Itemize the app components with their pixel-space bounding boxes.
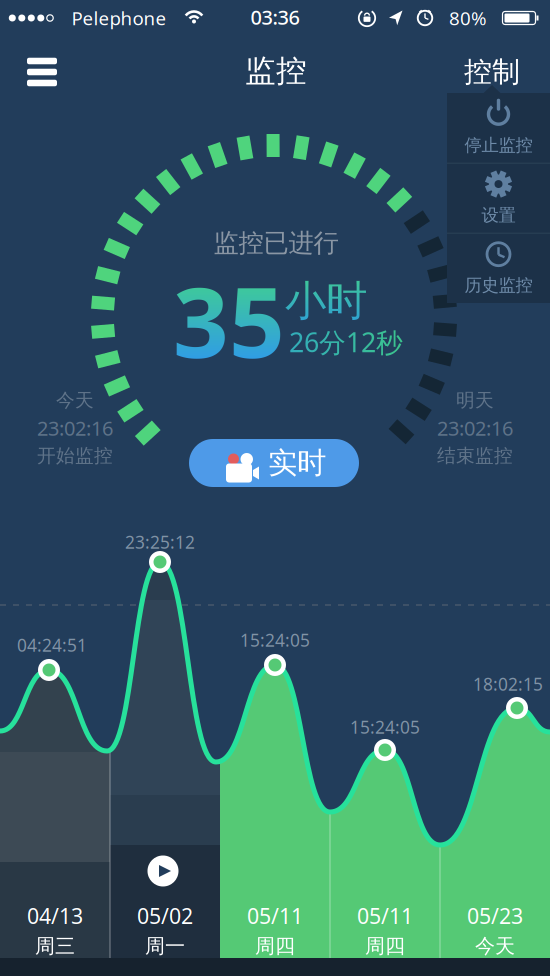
staticText: 开始监控 (37, 444, 113, 467)
button[interactable]: 控制 (457, 52, 527, 92)
button[interactable]: 05/23 (441, 899, 549, 961)
staticText: 15:24:05 (240, 628, 310, 651)
staticText: 历史监控 (464, 275, 532, 296)
staticText: 05/11 (247, 902, 303, 930)
button[interactable]: 实时 (189, 439, 359, 487)
staticText: 04/13 (27, 902, 83, 930)
staticText: 23:02:16 (437, 415, 513, 441)
staticText: 23:25:12 (125, 530, 195, 553)
staticText: 03:36 (250, 4, 299, 30)
staticText: 80% (449, 6, 487, 30)
staticText: 周一 (145, 934, 185, 958)
staticText: 设置 (481, 205, 515, 226)
staticText: 05/23 (467, 902, 523, 930)
button[interactable]: Menu (20, 52, 64, 92)
staticText: Pelephone (71, 6, 166, 30)
staticText: 今天 (475, 934, 515, 958)
staticText: 监控 (245, 52, 307, 90)
button[interactable]: 05/11 (331, 899, 439, 961)
staticText: 15:24:05 (350, 715, 420, 738)
staticText: 周四 (255, 934, 295, 958)
button[interactable]: 停止监控 (447, 93, 550, 163)
staticText: 控制 (464, 55, 520, 89)
staticText: 停止监控 (464, 135, 532, 156)
staticText: 23:02:16 (37, 415, 113, 441)
staticText: 05/11 (357, 902, 413, 930)
button[interactable]: 05/11 (221, 899, 329, 961)
staticText: 结束监控 (437, 444, 513, 467)
staticText: 实时 (268, 445, 326, 481)
button[interactable]: 设置 (447, 164, 550, 233)
staticText: 周四 (365, 934, 405, 958)
button[interactable]: 历史监控 (447, 234, 550, 303)
button[interactable]: 04/13 (1, 899, 109, 961)
staticText: 周三 (35, 934, 75, 958)
staticText: 05/02 (137, 902, 193, 930)
staticText: 明天 (456, 389, 494, 412)
button[interactable]: Play video (147, 855, 178, 886)
staticText: 监控已进行 (213, 227, 338, 258)
button[interactable]: 05/02 (111, 899, 219, 961)
staticText: 04:24:51 (17, 633, 87, 656)
staticText: 18:02:15 (473, 672, 543, 695)
staticText: 今天 (56, 389, 94, 412)
